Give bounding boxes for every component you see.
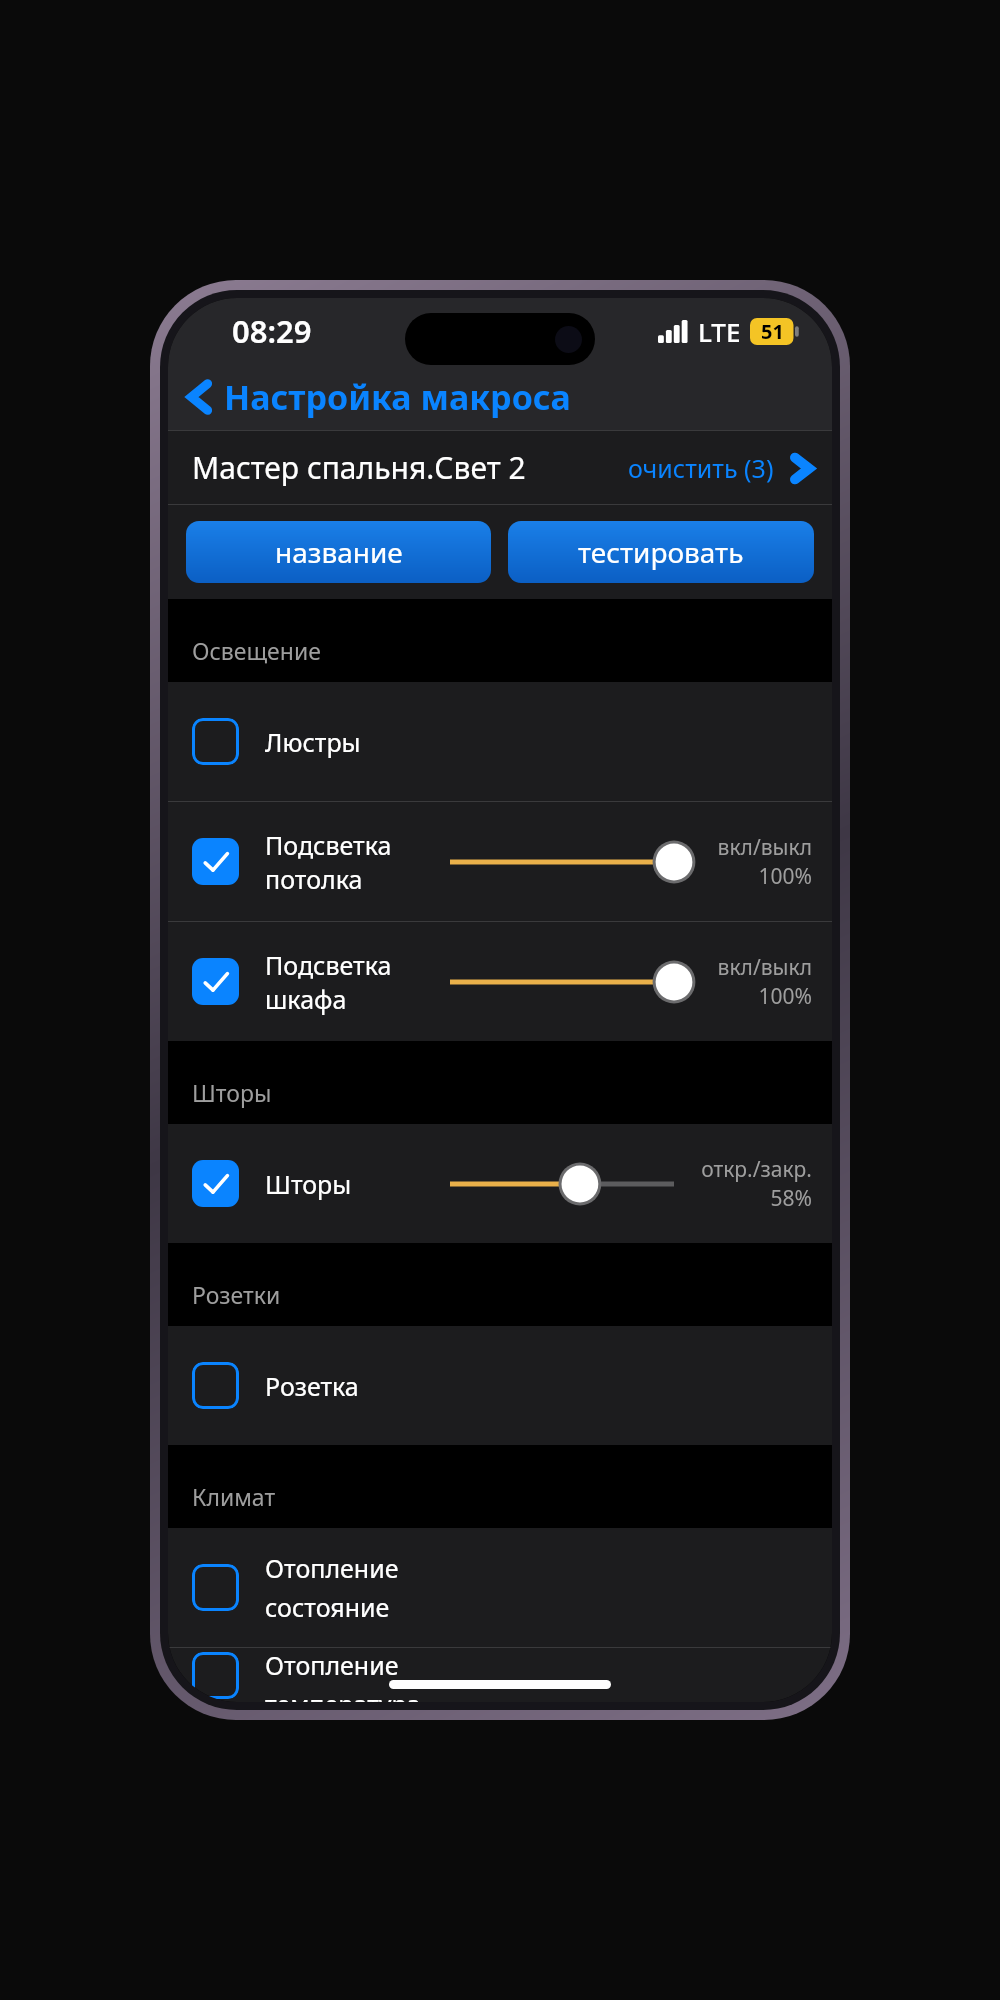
staticText: 58%: [690, 1184, 812, 1213]
button[interactable]: Отопление: [168, 1528, 832, 1648]
staticText: Отопление: [265, 1648, 399, 1682]
button[interactable]: Back: [186, 374, 571, 420]
button[interactable]: тестировать: [508, 521, 814, 583]
button[interactable]: Подсветка шкафа: [168, 922, 832, 1041]
staticText: 51: [761, 318, 784, 345]
button[interactable]: Мастер спальня.Свет 2: [168, 431, 832, 504]
staticText: LTE: [698, 314, 741, 349]
staticText: Розетка: [265, 1369, 359, 1403]
staticText: 08:29: [232, 310, 312, 352]
staticText: состояние: [265, 1590, 390, 1624]
staticText: Люстры: [265, 725, 361, 759]
button[interactable]: Шторы: [168, 1124, 832, 1243]
staticText: вкл/выкл: [690, 833, 812, 862]
staticText: Подсветка шкафа: [265, 948, 450, 1016]
other: Back: [186, 379, 213, 415]
staticText: название: [275, 533, 403, 571]
staticText: Освещение: [192, 635, 321, 666]
staticText: Климат: [192, 1481, 276, 1512]
staticText: Отопление: [265, 1551, 399, 1585]
staticText: 100%: [690, 862, 812, 891]
staticText: Настройка макроса: [224, 374, 571, 420]
staticText: вкл/выкл: [690, 953, 812, 982]
staticText: Шторы: [265, 1167, 352, 1201]
staticText: температура: [265, 1687, 421, 1702]
staticText: тестировать: [578, 533, 744, 571]
button[interactable]: Отопление: [168, 1648, 832, 1702]
staticText: 100%: [690, 982, 812, 1011]
button[interactable]: Люстры: [168, 682, 832, 802]
staticText: очистить (3): [628, 451, 774, 485]
staticText: откр./закр.: [690, 1155, 812, 1184]
button[interactable]: Розетка: [168, 1326, 832, 1445]
button[interactable]: Подсветка потолка: [168, 802, 832, 922]
staticText: Подсветка потолка: [265, 828, 450, 896]
staticText: Розетки: [192, 1279, 281, 1310]
staticText: Мастер спальня.Свет 2: [192, 447, 526, 488]
button[interactable]: название: [186, 521, 491, 583]
button[interactable]: очистить (3): [628, 451, 814, 485]
staticText: Шторы: [192, 1077, 272, 1108]
